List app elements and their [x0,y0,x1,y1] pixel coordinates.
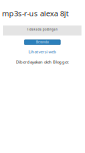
button[interactable]: Lihat versi web [0,49,85,54]
staticText: mp3s-r-us alexa 8jt [2,8,69,18]
staticText: Lihat versi web [28,49,56,54]
button[interactable]: Diberdayakan oleh Blogger. [0,59,85,64]
staticText: Tidak ada postingan [27,28,58,31]
button[interactable]: Beranda [25,40,60,44]
staticText: Diberdayakan oleh Blogger. [16,59,69,65]
staticText: Beranda [36,40,49,44]
